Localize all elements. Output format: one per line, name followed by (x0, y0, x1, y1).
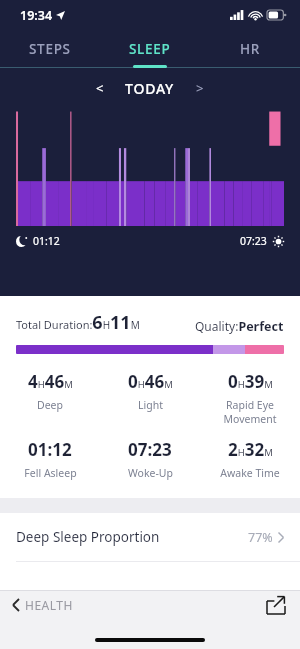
button[interactable]: HEALTH (12, 597, 73, 613)
button[interactable]: 0H39M (200, 370, 300, 426)
staticText: Awake Time (220, 466, 280, 480)
staticText: 19:34 (20, 7, 53, 24)
button[interactable]: Deep Sleep Proportion (0, 513, 300, 561)
button[interactable]: 2H32M (200, 438, 300, 480)
button[interactable]: Next day (187, 75, 213, 101)
button[interactable]: 4H46M (0, 370, 100, 412)
button[interactable]: HR (200, 30, 300, 68)
button[interactable]: Open in Health app (266, 595, 286, 615)
staticText: Deep (37, 398, 63, 412)
button[interactable]: 0H46M (100, 370, 200, 412)
button[interactable]: 07:23 (100, 438, 200, 480)
staticText: 0H39M (228, 370, 273, 393)
staticText: 77% (248, 529, 273, 546)
staticText: HR (240, 40, 261, 58)
staticText: 4H46M (28, 370, 73, 393)
staticText: 01:12 (28, 438, 72, 461)
staticText: < (96, 79, 104, 97)
button[interactable]: Previous day (87, 75, 113, 101)
staticText: Deep Sleep Proportion (16, 528, 160, 546)
staticText: STEPS (29, 40, 71, 58)
staticText: Light (138, 398, 163, 412)
staticText: Total Duration:6H11M (16, 310, 140, 335)
staticText: 2H32M (228, 438, 273, 461)
staticText: > (196, 79, 204, 97)
staticText: 0H46M (128, 370, 173, 393)
staticText: Rapid Eye Movement (200, 398, 300, 426)
staticText: 01:12 (33, 234, 60, 248)
button[interactable]: TODAY (125, 79, 175, 98)
staticText: Fell Asleep (24, 466, 77, 480)
staticText: Woke-Up (128, 466, 173, 480)
button[interactable]: 01:12 (0, 438, 100, 480)
staticText: 07:23 (128, 438, 172, 461)
staticText: Quality:Perfect (195, 318, 284, 335)
button[interactable]: STEPS (0, 30, 100, 68)
staticText: TODAY (125, 79, 175, 98)
button[interactable]: SLEEP (100, 30, 200, 68)
staticText: 07:23 (240, 234, 267, 248)
staticText: SLEEP (129, 40, 171, 58)
staticText: HEALTH (25, 597, 73, 613)
